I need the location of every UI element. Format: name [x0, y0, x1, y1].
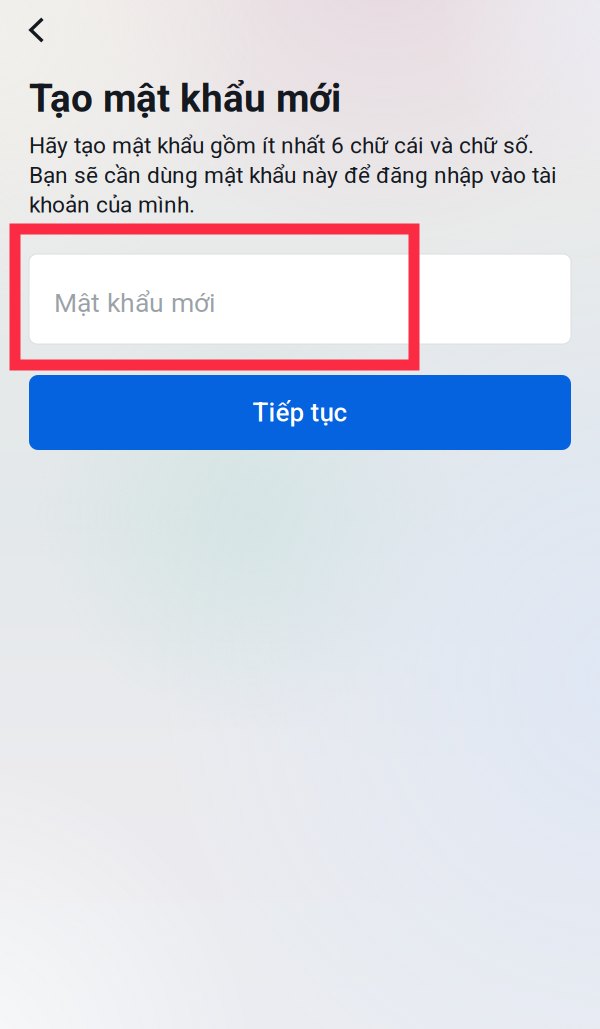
staticText: Mật khẩu mới — [54, 287, 215, 319]
button[interactable]: Mật khẩu mới — [29, 254, 571, 344]
button[interactable]: Back — [0, 0, 64, 59]
staticText: Hãy tạo mật khẩu gồm ít nhất 6 chữ cái v… — [29, 132, 557, 218]
button[interactable]: Tiếp tục — [29, 375, 571, 450]
staticText: Tiếp tục — [252, 397, 347, 428]
staticText: Tạo mật khẩu mới — [29, 76, 341, 121]
